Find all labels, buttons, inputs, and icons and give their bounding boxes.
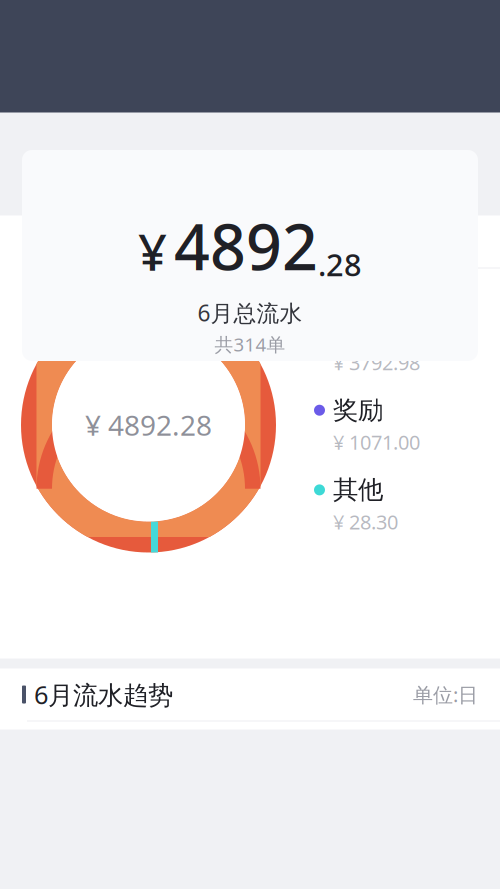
staticText: 4892 (174, 204, 318, 288)
staticText: 单位:日 (413, 681, 478, 708)
staticText: ¥ 3792.98 (333, 349, 420, 376)
staticText: ¥ 28.30 (333, 508, 398, 535)
staticText: ¥ (138, 217, 167, 285)
staticText: 6月总流水 (197, 298, 302, 328)
staticText: ¥ 1071.00 (333, 429, 420, 455)
staticText: 共314单 (214, 332, 285, 357)
staticText: ¥ 4892.28 (85, 406, 212, 444)
staticText: 6月流水趋势 (34, 678, 173, 711)
staticText: 其他 (333, 474, 383, 505)
staticText: 奖励 (333, 395, 383, 426)
staticText: 6月流水占比 (34, 225, 173, 258)
staticText: .28 (318, 244, 362, 285)
